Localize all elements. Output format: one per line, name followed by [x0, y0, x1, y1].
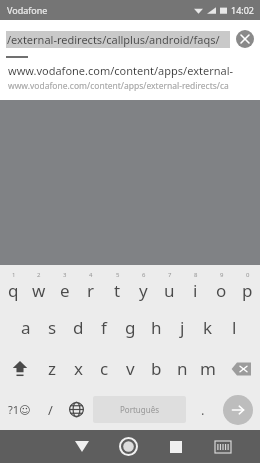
staticText: i	[193, 279, 198, 302]
staticText: z	[48, 357, 56, 380]
button[interactable]: Change language	[63, 389, 90, 430]
button[interactable]: 5	[104, 265, 130, 307]
button[interactable]: g	[117, 307, 143, 348]
staticText: f	[101, 316, 107, 339]
staticText: b	[151, 357, 162, 380]
button[interactable]: 3	[52, 265, 78, 307]
staticText: v	[126, 357, 135, 380]
staticText: 4	[89, 271, 93, 279]
staticText: www.vodafone.com/content/apps/external-r…	[8, 63, 260, 78]
button[interactable]: 9	[208, 265, 234, 307]
staticText: y	[139, 279, 148, 302]
button[interactable]: www.vodafone.com/content/apps/external-r…	[0, 58, 260, 100]
button[interactable]: m	[195, 348, 221, 389]
button[interactable]: x	[65, 348, 91, 389]
staticText: m	[200, 357, 216, 380]
staticText: Vodafone	[7, 4, 48, 16]
button[interactable]: l	[221, 307, 247, 348]
button[interactable]: Recent apps	[152, 430, 199, 463]
button[interactable]: Hide keyboard	[58, 430, 105, 463]
button[interactable]: Go	[223, 395, 253, 425]
staticText: s	[48, 316, 57, 339]
button[interactable]: Clear text	[236, 30, 254, 48]
staticText: j	[180, 316, 185, 339]
button[interactable]: h	[143, 307, 169, 348]
button[interactable]: .	[189, 389, 216, 430]
button[interactable]: 7	[156, 265, 182, 307]
staticText: o	[216, 279, 227, 302]
staticText: /	[48, 401, 53, 419]
button[interactable]: n	[169, 348, 195, 389]
button[interactable]: v	[117, 348, 143, 389]
staticText: h	[151, 316, 162, 339]
staticText: c	[100, 357, 109, 380]
staticText: p	[242, 279, 253, 302]
button[interactable]: 6	[130, 265, 156, 307]
button[interactable]: 1	[0, 265, 26, 307]
button[interactable]: k	[195, 307, 221, 348]
button[interactable]: Switch keyboard	[199, 430, 246, 463]
staticText: k	[203, 316, 213, 339]
button[interactable]: 2	[26, 265, 52, 307]
button[interactable]: j	[169, 307, 195, 348]
staticText: n	[177, 357, 188, 380]
staticText: www.vodafone.com/content/apps/external-r…	[8, 80, 229, 92]
staticText: 14:02	[231, 4, 255, 16]
button[interactable]: Backspace	[221, 348, 260, 389]
staticText: 0	[246, 271, 250, 279]
staticText: ?1☺	[8, 402, 31, 417]
staticText: a	[21, 316, 31, 339]
button[interactable]: a	[13, 307, 39, 348]
button[interactable]: c	[91, 348, 117, 389]
staticText: r	[87, 279, 95, 302]
button[interactable]: Português	[93, 396, 186, 423]
staticText: 6	[142, 271, 146, 279]
staticText: .	[201, 401, 205, 419]
staticText: t	[114, 279, 121, 302]
button[interactable]: Shift	[0, 348, 39, 389]
staticText: 9	[220, 271, 224, 279]
button[interactable]: 0	[234, 265, 260, 307]
button[interactable]: /	[38, 389, 63, 430]
staticText: u	[164, 279, 175, 302]
staticText: /external-redirects/callplus/android/faq…	[7, 32, 229, 47]
staticText: 1	[12, 271, 16, 279]
button[interactable]: s	[39, 307, 65, 348]
button[interactable]: 8	[182, 265, 208, 307]
staticText: 2	[37, 271, 41, 279]
staticText: x	[74, 357, 83, 380]
button[interactable]: z	[39, 348, 65, 389]
button[interactable]: Home	[105, 430, 152, 463]
button[interactable]: ?1☺	[0, 389, 38, 430]
staticText: 7	[168, 271, 172, 279]
staticText: l	[232, 316, 237, 339]
button[interactable]: b	[143, 348, 169, 389]
button[interactable]: 4	[78, 265, 104, 307]
staticText: w	[32, 279, 46, 302]
staticText: Português	[120, 404, 160, 415]
staticText: 3	[63, 271, 67, 279]
staticText: g	[125, 316, 136, 339]
staticText: e	[60, 279, 70, 302]
button[interactable]: d	[65, 307, 91, 348]
staticText: 5	[116, 271, 120, 279]
button[interactable]: f	[91, 307, 117, 348]
staticText: d	[73, 316, 84, 339]
staticText: 8	[194, 271, 198, 279]
staticText: q	[8, 279, 19, 302]
